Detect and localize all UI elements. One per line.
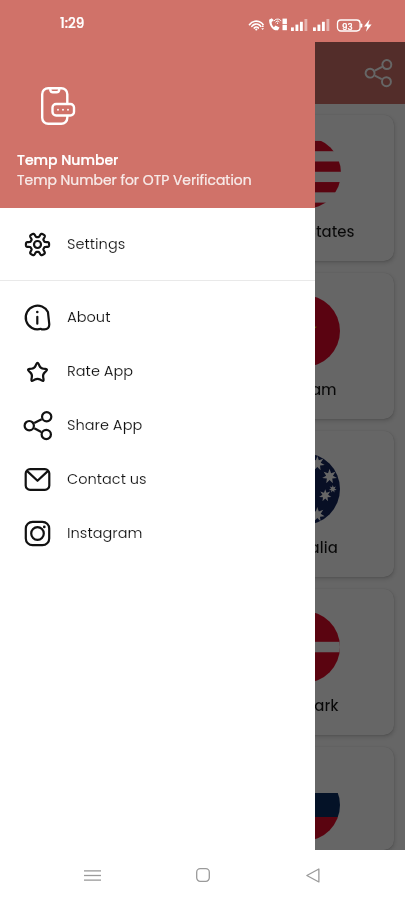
staticText: 93 xyxy=(342,21,353,33)
staticText: Share App xyxy=(67,415,143,435)
button[interactable]: Instagram xyxy=(0,506,315,560)
button[interactable]: Recent apps xyxy=(74,857,110,893)
button[interactable]: Russia xyxy=(214,747,394,850)
button[interactable]: Canada xyxy=(11,115,191,261)
staticText: About xyxy=(67,307,111,327)
button[interactable]: Home xyxy=(185,857,221,893)
staticText: Settings xyxy=(67,234,126,254)
button[interactable]: Thailand xyxy=(11,273,191,419)
button[interactable]: About xyxy=(0,290,315,344)
staticText: Thailand xyxy=(68,379,135,400)
button[interactable]: Vietnam xyxy=(214,273,394,419)
staticText: Contact us xyxy=(67,469,147,489)
staticText: Vietnam xyxy=(272,379,337,400)
staticText: United States xyxy=(254,221,355,242)
button[interactable]: United States xyxy=(214,115,394,261)
staticText: Instagram xyxy=(67,523,143,543)
staticText: Rate App xyxy=(67,361,134,381)
button[interactable]: Australia xyxy=(214,431,394,577)
staticText: Canada xyxy=(70,221,133,242)
button[interactable]: Settings xyxy=(0,217,315,271)
button[interactable]: Denmark xyxy=(214,589,394,735)
button[interactable]: Back xyxy=(295,857,331,893)
button[interactable]: Contact us xyxy=(0,452,315,506)
button[interactable]: Austria xyxy=(11,431,191,577)
staticText: Temp Number xyxy=(17,150,119,170)
button[interactable]: Rate App xyxy=(0,344,315,398)
button[interactable]: Share App xyxy=(0,398,315,452)
staticText: Temp Number for OTP Verification xyxy=(17,170,252,189)
staticText: Denmark xyxy=(269,695,339,716)
staticText: 1:29 xyxy=(60,14,85,33)
staticText: Australia xyxy=(270,537,338,558)
staticText: Austria xyxy=(74,537,128,558)
button[interactable]: Share xyxy=(358,53,398,93)
